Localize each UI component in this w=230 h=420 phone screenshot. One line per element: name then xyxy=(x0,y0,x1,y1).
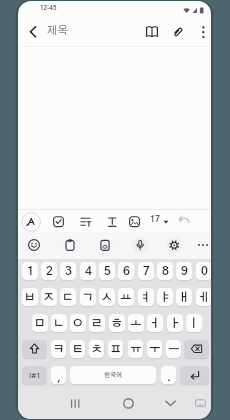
button[interactable] xyxy=(195,237,211,253)
staticText: 3 xyxy=(65,265,72,277)
button[interactable]: , xyxy=(51,366,66,384)
button[interactable]: ㅅ xyxy=(99,288,115,306)
button[interactable] xyxy=(159,395,182,412)
staticText: ㅡ xyxy=(168,344,180,356)
button[interactable] xyxy=(21,212,41,232)
staticText: ㅅ xyxy=(101,292,113,304)
button[interactable]: 7 xyxy=(138,262,154,280)
staticText: ㅇ xyxy=(72,318,84,330)
button[interactable] xyxy=(50,213,67,230)
button[interactable]: ㅈ xyxy=(41,288,57,306)
button[interactable] xyxy=(64,395,88,412)
button[interactable]: ㅛ xyxy=(118,288,134,306)
staticText: ㄹ xyxy=(91,318,103,330)
staticText: ㅈ xyxy=(43,292,55,304)
button[interactable]: ㅐ xyxy=(176,288,192,306)
button[interactable]: 1 xyxy=(22,262,38,280)
button[interactable]: ㅓ xyxy=(147,314,163,332)
button[interactable]: ㅔ xyxy=(196,288,211,306)
staticText: ㅐ xyxy=(178,292,190,304)
button[interactable]: ㅌ xyxy=(70,340,85,358)
button[interactable]: 8 xyxy=(157,262,173,280)
button[interactable]: 6 xyxy=(118,262,134,280)
button[interactable]: ㄹ xyxy=(89,314,105,332)
staticText: ㄴ xyxy=(53,318,65,330)
staticText: 5 xyxy=(104,265,111,277)
button[interactable]: 2 xyxy=(41,262,57,280)
staticText: ㅋ xyxy=(53,344,65,356)
button[interactable]: ㅕ xyxy=(138,288,154,306)
button[interactable] xyxy=(144,24,160,40)
staticText: 12:45 xyxy=(40,5,57,11)
staticText: ㅁ xyxy=(34,318,46,330)
staticText: ㅠ xyxy=(130,344,142,356)
staticText: ㅍ xyxy=(110,344,122,356)
button[interactable] xyxy=(97,237,113,253)
button[interactable]: 4 xyxy=(80,262,96,280)
staticText: ㅌ xyxy=(72,344,84,356)
button[interactable]: !#1 xyxy=(22,366,47,384)
button[interactable] xyxy=(184,340,209,358)
button[interactable]: ㅁ xyxy=(32,314,48,332)
button[interactable]: ㄴ xyxy=(51,314,67,332)
button[interactable] xyxy=(132,237,148,254)
button[interactable]: ㅋ xyxy=(51,340,66,358)
button[interactable]: ㅗ xyxy=(128,314,144,332)
button[interactable] xyxy=(175,213,193,230)
staticText: 17 xyxy=(150,215,161,224)
button[interactable] xyxy=(193,396,208,410)
staticText: , xyxy=(57,372,61,383)
button[interactable] xyxy=(26,237,42,253)
button[interactable] xyxy=(117,395,140,412)
button[interactable] xyxy=(166,237,182,254)
staticText: 한국어 xyxy=(104,372,123,378)
staticText: ㅕ xyxy=(140,292,152,304)
button[interactable] xyxy=(104,213,121,230)
button[interactable]: ㅇ xyxy=(70,314,86,332)
staticText: ㅊ xyxy=(91,344,103,356)
button[interactable]: ㅡ xyxy=(166,340,181,358)
button[interactable]: ㄷ xyxy=(60,288,76,306)
staticText: 9 xyxy=(181,265,188,277)
button[interactable]: ㅜ xyxy=(147,340,162,358)
button[interactable]: ㅊ xyxy=(89,340,104,358)
staticText: ㅣ xyxy=(188,318,200,330)
staticText: ㄱ xyxy=(82,292,94,304)
button[interactable] xyxy=(196,24,211,40)
button[interactable] xyxy=(170,24,186,40)
button[interactable]: ㅏ xyxy=(167,314,183,332)
button[interactable]: 3 xyxy=(60,262,76,280)
staticText: 6 xyxy=(123,265,130,277)
button[interactable]: 0 xyxy=(196,262,211,280)
staticText: !#1 xyxy=(29,372,41,379)
button[interactable] xyxy=(77,213,94,230)
button[interactable]: ㅍ xyxy=(108,340,123,358)
button[interactable]: 9 xyxy=(176,262,192,280)
button[interactable] xyxy=(147,213,170,230)
button[interactable] xyxy=(22,340,47,358)
staticText: ㅜ xyxy=(149,344,161,356)
button[interactable]: ㅂ xyxy=(22,288,38,306)
button[interactable]: . xyxy=(161,366,176,384)
button[interactable]: 한국어 xyxy=(70,366,156,384)
button[interactable]: ㅣ xyxy=(186,314,202,332)
staticText: ㅛ xyxy=(120,292,132,304)
staticText: ㅔ xyxy=(198,292,210,304)
button[interactable]: ㄱ xyxy=(80,288,96,306)
button[interactable] xyxy=(24,22,42,42)
staticText: 4 xyxy=(85,265,92,277)
button[interactable]: 5 xyxy=(99,262,115,280)
button[interactable] xyxy=(180,366,209,384)
staticText: 0 xyxy=(201,265,208,277)
staticText: ㄷ xyxy=(62,292,74,304)
button[interactable] xyxy=(126,213,143,230)
button[interactable] xyxy=(62,237,78,253)
button[interactable]: ㅠ xyxy=(128,340,143,358)
staticText: ㅏ xyxy=(169,318,181,330)
staticText: ㅂ xyxy=(24,292,36,304)
staticText: 2 xyxy=(46,265,53,277)
button[interactable]: ㅎ xyxy=(109,314,125,332)
staticText: 8 xyxy=(162,265,169,277)
staticText: ㅎ xyxy=(111,318,123,330)
button[interactable]: ㅑ xyxy=(157,288,173,306)
